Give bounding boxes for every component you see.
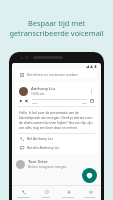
staticText: Anthony Liu xyxy=(31,86,56,92)
button[interactable]: Luidspreker xyxy=(24,98,30,104)
button[interactable]: Anthony Liu xyxy=(15,82,98,154)
button[interactable]: Verwijderen xyxy=(89,98,95,104)
staticText: Bericht Anthony Liu xyxy=(27,145,60,150)
staticText: Berichten en contacten zoeken xyxy=(27,72,78,77)
button[interactable]: Toni Grier xyxy=(16,157,97,171)
button[interactable]: Nieuw gesprek xyxy=(82,168,97,183)
staticText: Favorieten xyxy=(17,195,30,198)
staticText: Hallo, ik bel over de presentatie van de… xyxy=(19,110,94,130)
button[interactable]: Bel Anthony Liu xyxy=(15,134,98,143)
button[interactable]: Voicemail xyxy=(79,186,101,200)
staticText: Recent xyxy=(42,195,51,198)
staticText: Bel Anthony Liu xyxy=(27,136,53,141)
button[interactable]: Afspelen xyxy=(18,98,24,104)
staticText: Voicemail xyxy=(84,195,96,198)
staticText: 0:23 xyxy=(82,101,87,104)
button[interactable]: Recent xyxy=(35,186,57,200)
button[interactable]: Berichten en contacten zoeken xyxy=(16,69,97,79)
staticText: Bespaar tijd met getranscribeerde voicem… xyxy=(5,18,108,38)
staticText: 0:00 xyxy=(32,101,37,104)
staticText: Bel me terug over morgen xyxy=(28,165,67,169)
staticText: 10:06 am xyxy=(31,92,45,96)
staticText: Toni Grier xyxy=(28,159,48,165)
button[interactable]: Bericht Anthony Liu xyxy=(15,143,98,152)
button[interactable]: Meer opties xyxy=(87,87,95,95)
button[interactable]: Favorieten xyxy=(12,186,35,200)
staticText: Contacten xyxy=(62,195,75,198)
button[interactable]: Contacten xyxy=(57,186,79,200)
